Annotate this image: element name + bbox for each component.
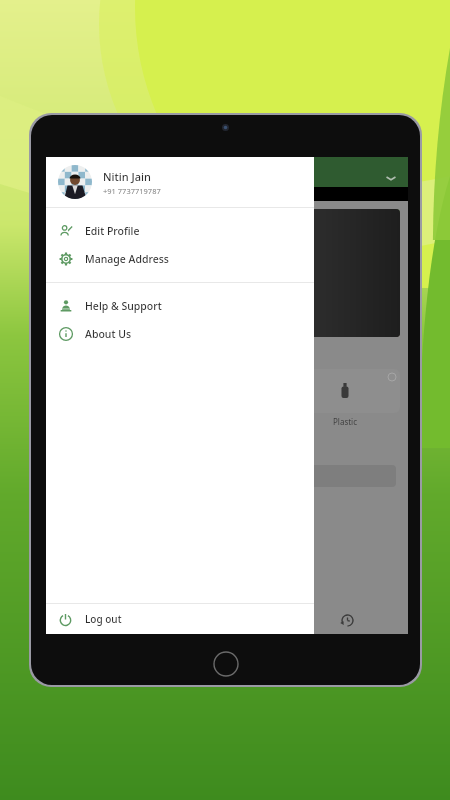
button[interactable]: History — [287, 606, 408, 634]
button[interactable]: Manage Address — [46, 245, 314, 273]
button[interactable]: About Us — [46, 320, 314, 348]
staticText: +91 7737719787 — [103, 186, 161, 196]
staticText: Edit Profile — [85, 224, 140, 238]
button[interactable]: Help & Support — [46, 292, 314, 320]
button[interactable]: Log out — [46, 604, 314, 634]
staticText: Plastic — [333, 416, 358, 427]
button[interactable]: Edit Profile — [46, 217, 314, 245]
staticText: Help & Support — [85, 299, 162, 313]
staticText: Log out — [85, 612, 122, 626]
button[interactable]: Nitin Jain — [46, 157, 314, 207]
staticText: Manage Address — [85, 252, 169, 266]
staticText: About Us — [85, 327, 131, 341]
staticText: Rajasthan 30202... — [56, 169, 384, 181]
staticText: Nitin Jain — [103, 169, 151, 184]
button[interactable] — [290, 369, 400, 413]
button[interactable]: History — [46, 606, 166, 634]
button[interactable]: Send Request — [58, 465, 396, 487]
